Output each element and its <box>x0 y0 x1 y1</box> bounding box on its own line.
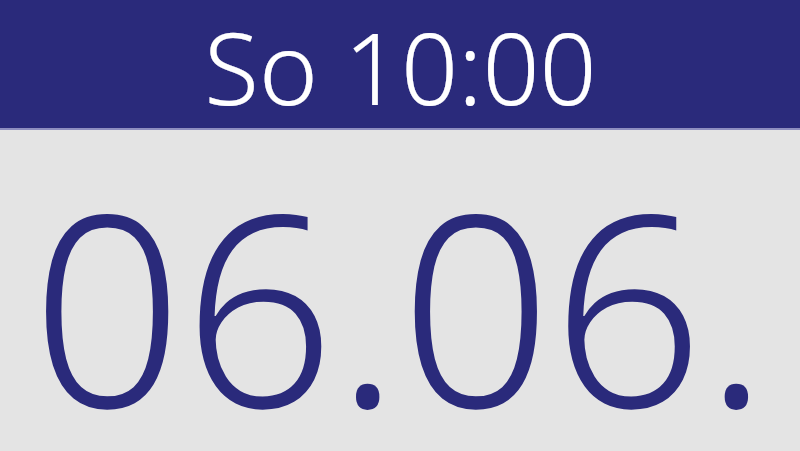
button[interactable]: So 10:00 <box>0 0 800 128</box>
staticText: 06.06. <box>31 123 769 444</box>
staticText: So 10:00 <box>204 0 597 126</box>
button[interactable]: 06.06. <box>0 130 800 451</box>
